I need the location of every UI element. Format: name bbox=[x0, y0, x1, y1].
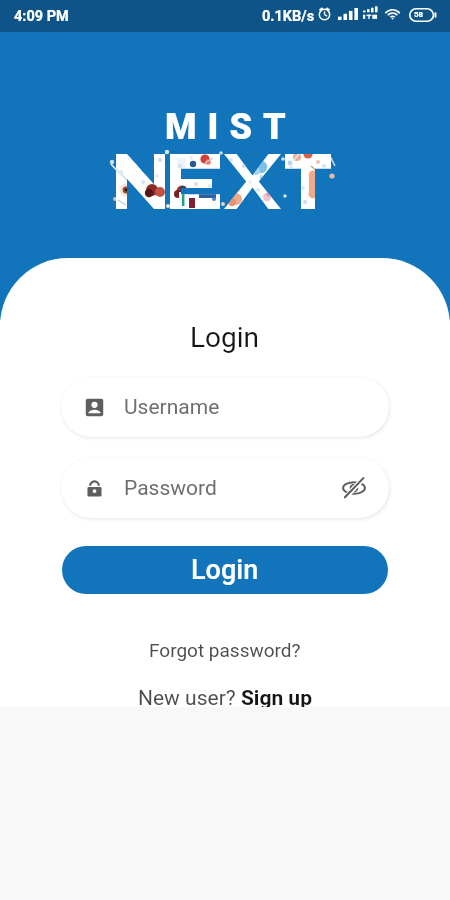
button[interactable]: Show password bbox=[339, 473, 369, 503]
staticText: 58 bbox=[414, 10, 424, 19]
staticText: Username bbox=[124, 395, 220, 420]
staticText: New user? Sign up bbox=[138, 686, 312, 707]
staticText: Forgot password? bbox=[149, 639, 301, 661]
staticText: 0.1KB/s bbox=[262, 8, 315, 25]
button[interactable]: Password bbox=[61, 458, 389, 518]
staticText: Password bbox=[124, 476, 217, 501]
staticText: Login bbox=[190, 321, 260, 354]
staticText: 4:09 PM bbox=[14, 8, 69, 25]
staticText: MIST bbox=[165, 106, 297, 148]
button[interactable]: Forgot password? bbox=[139, 634, 311, 666]
button[interactable]: New user? Sign up bbox=[128, 681, 322, 707]
staticText: Login bbox=[191, 554, 259, 586]
button[interactable]: Login bbox=[62, 546, 388, 594]
button[interactable]: Username bbox=[61, 377, 389, 437]
